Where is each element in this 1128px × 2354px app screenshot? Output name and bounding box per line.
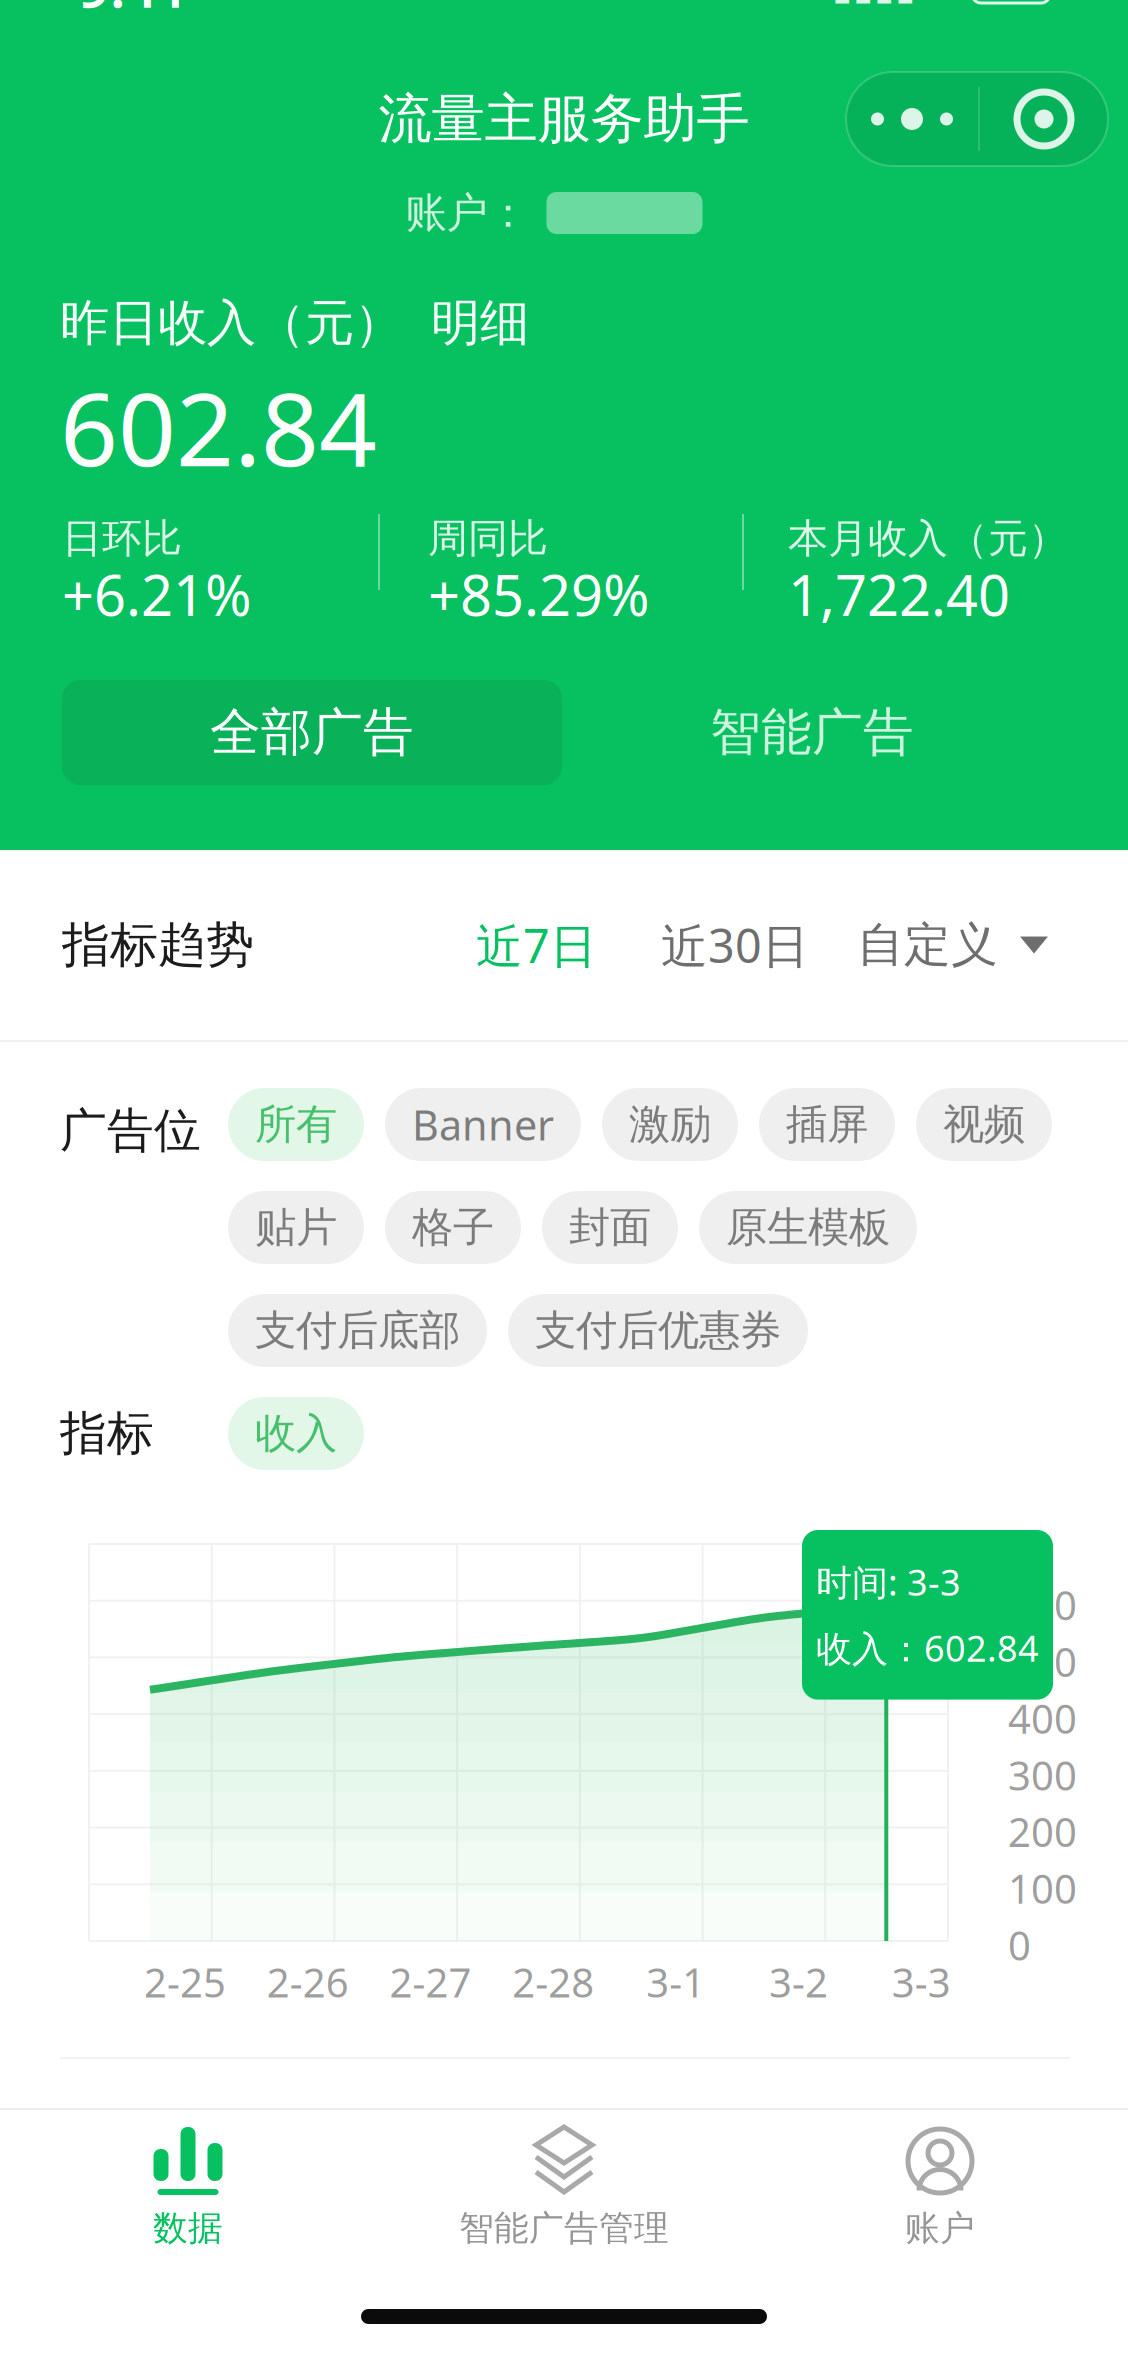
button[interactable]: 近30日 (661, 914, 809, 976)
button[interactable]: 贴片 (228, 1191, 364, 1264)
button[interactable]: 视频 (916, 1088, 1052, 1161)
staticText: 流量主服务助手 (378, 86, 749, 152)
staticText: Banner (412, 1097, 554, 1152)
staticText: 格子 (412, 1202, 494, 1253)
staticText: 广告位 (60, 1102, 201, 1159)
staticText: 收入 (255, 1408, 337, 1459)
staticText: 智能广告管理 (459, 2207, 669, 2250)
button[interactable]: 智能广告管理 (376, 2127, 752, 2277)
staticText: 600 (1008, 1578, 1077, 1631)
button[interactable]: 智能广告 (562, 680, 1062, 785)
staticText: 收入：602.84 (816, 1624, 1039, 1672)
button[interactable]: 收入 (228, 1397, 364, 1470)
staticText: 原生模板 (726, 1202, 890, 1253)
staticText: 视频 (943, 1099, 1025, 1150)
button[interactable]: 支付后底部 (228, 1294, 487, 1367)
button[interactable]: 插屏 (759, 1088, 895, 1161)
button[interactable]: 明细 (431, 293, 529, 353)
staticText: 100 (1008, 1862, 1077, 1915)
staticText: 昨日收入（元） (60, 293, 403, 353)
staticText: 明细 (431, 293, 529, 353)
button[interactable]: 数据 (0, 2127, 376, 2277)
staticText: 本月收入（元） (788, 514, 1068, 563)
staticText: ▮▮▮▮ (832, 0, 916, 7)
button[interactable]: 近7日 (476, 914, 597, 976)
button[interactable]: 账户 (752, 2127, 1128, 2277)
staticText: 全部广告 (210, 701, 414, 764)
staticText: 账户： (405, 188, 528, 238)
staticText: 近30日 (661, 914, 809, 976)
staticText: 近7日 (476, 914, 597, 976)
staticText: 300 (1008, 1748, 1077, 1801)
button[interactable]: 激励 (602, 1088, 738, 1161)
staticText: +85.29% (428, 557, 650, 631)
staticText: 日环比 (62, 514, 182, 563)
button[interactable]: More options (846, 72, 978, 166)
button[interactable]: 封面 (542, 1191, 678, 1264)
staticText: 3-3 (892, 1955, 951, 2008)
staticText: 0 (1008, 1918, 1031, 1971)
button[interactable]: 全部广告 (62, 680, 562, 785)
staticText: 自定义 (857, 916, 998, 974)
staticText: 9:41 (78, 0, 189, 23)
staticText: 2-28 (512, 1955, 594, 2008)
staticText: 周同比 (428, 514, 548, 563)
button[interactable]: 原生模板 (699, 1191, 917, 1264)
staticText: 账户 (905, 2207, 975, 2250)
staticText: 指标趋势 (62, 915, 254, 974)
button[interactable]: 所有 (228, 1088, 364, 1161)
button[interactable]: 格子 (385, 1191, 521, 1264)
staticText: 1,722.40 (788, 557, 1010, 631)
staticText: +6.21% (62, 557, 252, 631)
staticText: 500 (1008, 1635, 1077, 1688)
staticText: 插屏 (786, 1099, 868, 1150)
staticText: 贴片 (255, 1202, 337, 1253)
staticText: 2-25 (144, 1955, 226, 2008)
staticText: 指标 (60, 1405, 154, 1462)
button[interactable]: 自定义 (857, 916, 1048, 974)
staticText: 400 (1008, 1692, 1077, 1745)
button[interactable]: Close mini program (980, 72, 1108, 166)
staticText: 602.84 (60, 360, 377, 494)
staticText: 3-1 (646, 1955, 705, 2008)
staticText: 3-2 (769, 1955, 828, 2008)
staticText: 2-27 (389, 1955, 471, 2008)
staticText: 封面 (569, 1202, 651, 1253)
staticText: 支付后优惠券 (535, 1305, 781, 1356)
staticText: 200 (1008, 1805, 1077, 1858)
staticText: 支付后底部 (255, 1305, 460, 1356)
staticText: 时间: 3-3 (816, 1558, 961, 1606)
staticText: 2-26 (267, 1955, 349, 2008)
staticText: 所有 (255, 1099, 337, 1150)
staticText: 数据 (153, 2207, 223, 2250)
staticText: 激励 (629, 1099, 711, 1150)
button[interactable]: 支付后优惠券 (508, 1294, 808, 1367)
staticText: 智能广告 (710, 701, 914, 764)
button[interactable]: Banner (385, 1088, 581, 1161)
